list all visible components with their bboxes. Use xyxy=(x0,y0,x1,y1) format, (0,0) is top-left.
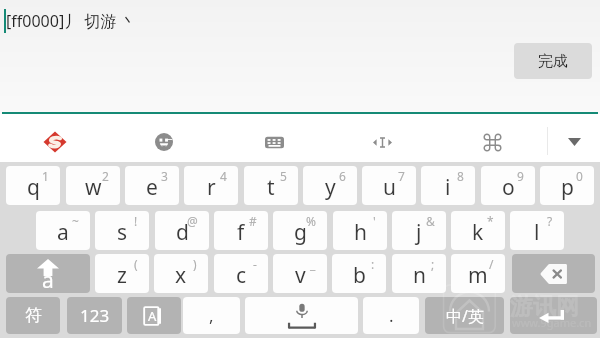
staticText: 4 xyxy=(220,168,227,184)
staticText: [ff0000]丿 切游 丶 xyxy=(6,10,137,32)
button[interactable]: g xyxy=(273,211,327,250)
staticText: o xyxy=(502,173,515,202)
staticText: i xyxy=(445,173,451,202)
staticText: , xyxy=(209,304,214,327)
staticText: p xyxy=(561,173,574,202)
button[interactable]: Keyboard layout xyxy=(250,118,298,166)
staticText: l xyxy=(534,218,540,247)
staticText: 游讯网 xyxy=(510,292,579,321)
button[interactable]: Shift xyxy=(6,254,90,293)
button[interactable]: i xyxy=(421,166,475,205)
staticText: t xyxy=(267,173,275,202)
button[interactable]: n xyxy=(392,254,446,293)
staticText: z xyxy=(117,261,127,290)
button[interactable]: f xyxy=(214,211,268,250)
staticText: 9 xyxy=(517,168,524,184)
button[interactable]: Move cursor xyxy=(358,118,406,166)
staticText: c xyxy=(236,261,247,290)
staticText: a xyxy=(57,218,69,247)
staticText: w xyxy=(85,173,102,202)
staticText: 123 xyxy=(80,304,110,327)
button[interactable]: p xyxy=(540,166,594,205)
button[interactable]: , xyxy=(183,297,240,334)
button[interactable]: j xyxy=(392,211,446,250)
staticText: & xyxy=(426,213,435,229)
button[interactable]: Sogou input method xyxy=(31,118,79,166)
button[interactable]: b xyxy=(332,254,386,293)
button[interactable]: v xyxy=(273,254,327,293)
staticText: % xyxy=(306,213,316,229)
button[interactable]: 符 xyxy=(6,297,60,334)
staticText: y xyxy=(325,173,336,202)
button[interactable]: d xyxy=(155,211,209,250)
staticText: h xyxy=(354,218,367,247)
button[interactable]: u xyxy=(362,166,416,205)
staticText: 5 xyxy=(280,168,287,184)
staticText: j xyxy=(416,218,422,247)
button[interactable]: Enter xyxy=(510,297,597,334)
staticText: 6 xyxy=(339,168,346,184)
button[interactable]: w xyxy=(66,166,120,205)
staticText: . xyxy=(389,304,394,327)
staticText: / xyxy=(489,256,494,272)
staticText: 1 xyxy=(42,168,49,184)
staticText: ) xyxy=(193,256,197,272)
staticText: n xyxy=(413,261,426,290)
staticText: A xyxy=(148,307,157,325)
button[interactable]: c xyxy=(214,254,268,293)
staticText: 3 xyxy=(161,168,168,184)
staticText: @ xyxy=(187,213,198,229)
staticText: r xyxy=(207,173,216,202)
staticText: 0 xyxy=(576,168,583,184)
button[interactable]: o xyxy=(481,166,535,205)
staticText: g xyxy=(294,218,307,247)
button[interactable]: Hide keyboard xyxy=(550,118,598,166)
button[interactable]: k xyxy=(451,211,505,250)
button[interactable]: More functions xyxy=(468,118,516,166)
staticText: b xyxy=(353,261,366,290)
button[interactable]: Emoji xyxy=(140,118,188,166)
staticText: 中/英 xyxy=(446,305,484,327)
button[interactable]: z xyxy=(95,254,149,293)
button[interactable]: Space xyxy=(245,297,358,334)
staticText: m xyxy=(468,261,488,290)
button[interactable]: Backspace xyxy=(512,254,595,293)
staticText: q xyxy=(27,173,40,202)
button[interactable]: h xyxy=(333,211,387,250)
staticText: 7 xyxy=(398,168,405,184)
button[interactable]: . xyxy=(363,297,419,334)
staticText: : xyxy=(371,256,375,272)
staticText: ( xyxy=(134,256,138,272)
staticText: ; xyxy=(431,256,435,272)
button[interactable]: 123 xyxy=(67,297,122,334)
staticText: - xyxy=(253,256,257,272)
button[interactable]: r xyxy=(184,166,238,205)
button[interactable]: m xyxy=(451,254,505,293)
button[interactable]: y xyxy=(303,166,357,205)
button[interactable]: 完成 xyxy=(514,43,592,79)
staticText: 2 xyxy=(102,168,109,184)
staticText: ! xyxy=(134,213,138,229)
staticText: ' xyxy=(373,213,376,229)
staticText: _ xyxy=(310,256,316,272)
button[interactable]: x xyxy=(154,254,208,293)
staticText: ? xyxy=(547,213,553,229)
button[interactable]: a xyxy=(36,211,90,250)
button[interactable]: e xyxy=(125,166,179,205)
staticText: 完成 xyxy=(538,52,568,71)
staticText: # xyxy=(249,213,257,229)
staticText: ~ xyxy=(72,213,79,229)
button[interactable]: 中/英 xyxy=(425,297,504,334)
button[interactable]: s xyxy=(95,211,149,250)
staticText: 8 xyxy=(457,168,464,184)
staticText: e xyxy=(146,173,158,202)
staticText: u xyxy=(383,173,396,202)
staticText: f xyxy=(237,218,245,247)
button[interactable]: Switch input language xyxy=(127,297,181,334)
button[interactable]: q xyxy=(6,166,60,205)
button[interactable]: l xyxy=(510,211,564,250)
staticText: v xyxy=(295,261,306,290)
button[interactable]: t xyxy=(244,166,298,205)
staticText: a xyxy=(42,266,54,293)
staticText: s xyxy=(117,218,128,247)
